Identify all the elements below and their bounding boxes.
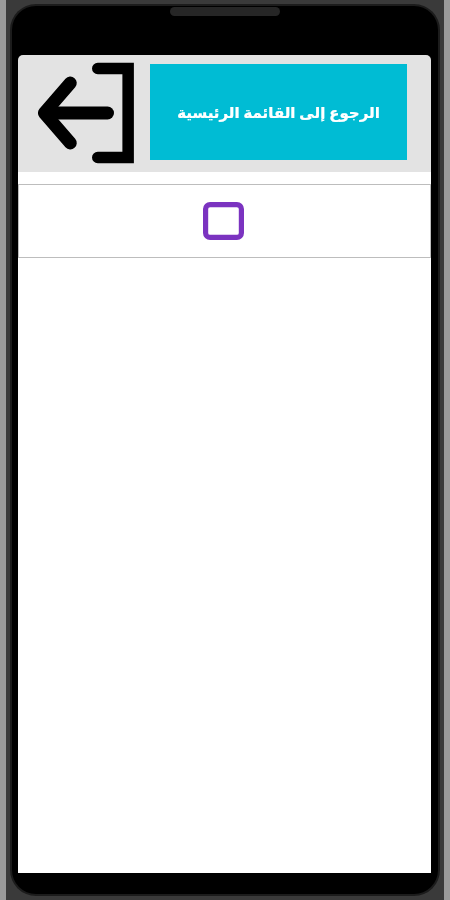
button[interactable]: Stop: [18, 184, 431, 258]
button[interactable]: Exit: [18, 55, 150, 172]
button[interactable]: الرجوع إلى القائمة الرئيسية: [150, 64, 407, 160]
staticText: الرجوع إلى القائمة الرئيسية: [177, 102, 380, 122]
